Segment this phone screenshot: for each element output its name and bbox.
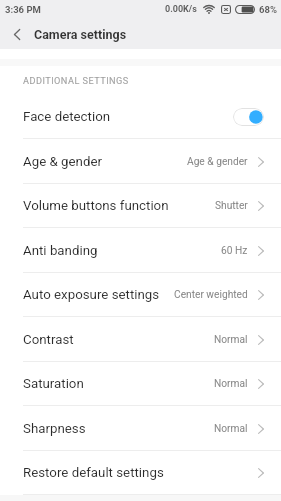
staticText: ADDITIONAL SETTINGS [23, 75, 129, 86]
staticText: Volume buttons function [23, 198, 169, 214]
staticText: 60 Hz [221, 245, 248, 257]
staticText: Anti banding [23, 243, 98, 259]
staticText: Sharpness [23, 421, 86, 437]
staticText: Age & gender [23, 154, 102, 170]
button[interactable]: Sharpness [0, 406, 281, 451]
staticText: Age & gender [187, 156, 248, 168]
staticText: Restore default settings [23, 465, 164, 481]
button[interactable]: Contrast [0, 317, 281, 362]
button[interactable]: Anti banding [0, 228, 281, 273]
staticText: Normal [214, 423, 248, 435]
staticText: Auto exposure settings [23, 287, 160, 303]
button[interactable]: Face detection [0, 94, 281, 139]
staticText: Saturation [23, 376, 84, 392]
button[interactable]: Face detection toggle [233, 108, 264, 126]
button[interactable]: Volume buttons function [0, 184, 281, 228]
staticText: Camera settings [34, 27, 127, 42]
button[interactable]: Auto exposure settings [0, 273, 281, 317]
staticText: Center weighted [174, 289, 248, 301]
staticText: Contrast [23, 332, 74, 348]
button[interactable]: Restore default settings [0, 451, 281, 495]
button[interactable]: Age & gender [0, 139, 281, 184]
button[interactable]: Saturation [0, 362, 281, 406]
staticText: 3:36 PM [5, 4, 41, 15]
staticText: 68% [259, 4, 277, 15]
staticText: Normal [214, 334, 248, 346]
staticText: Shutter [215, 200, 248, 212]
staticText: Face detection [23, 109, 111, 125]
staticText: 0.00K/s [165, 4, 197, 15]
staticText: Normal [214, 378, 248, 390]
button[interactable]: Back [0, 19, 34, 49]
